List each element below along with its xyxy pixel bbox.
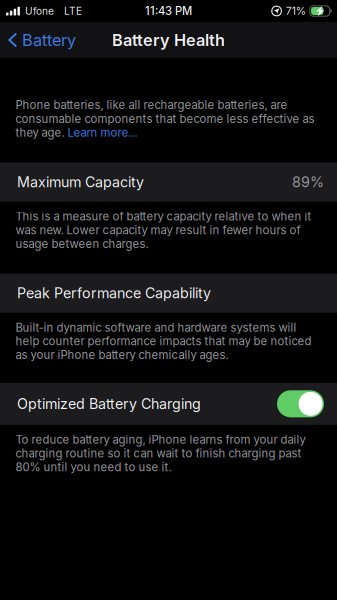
staticText: 89%	[292, 173, 324, 191]
staticText: Ufone	[25, 5, 54, 17]
button[interactable]: Optimized Battery Charging	[0, 383, 337, 425]
staticText: Peak Performance Capability	[17, 284, 211, 302]
staticText: Battery Health	[112, 30, 225, 50]
button[interactable]: Learn more...	[67, 126, 137, 139]
staticText: Maximum Capacity	[17, 173, 144, 191]
staticText: 71%	[286, 5, 306, 17]
button[interactable]: Battery	[0, 22, 84, 58]
staticText: To reduce battery aging, iPhone learns f…	[15, 433, 305, 474]
staticText: LTE	[64, 5, 82, 17]
button[interactable]: Maximum Capacity	[0, 162, 337, 201]
staticText: Optimized Battery Charging	[17, 395, 201, 412]
staticText: they age.	[15, 126, 67, 139]
button[interactable]: Peak Performance Capability	[0, 274, 337, 313]
staticText: Battery	[22, 30, 76, 50]
button[interactable]: Optimized Battery Charging, on	[277, 390, 324, 417]
staticText: Learn more...	[67, 126, 137, 139]
staticText: consumable components that become less e…	[15, 112, 314, 126]
staticText: Phone batteries, like all rechargeable b…	[15, 98, 287, 112]
staticText: 11:43 PM	[145, 4, 192, 18]
staticText: This is a measure of battery capacity re…	[15, 209, 311, 251]
staticText: Built-in dynamic software and hardware s…	[15, 321, 311, 362]
